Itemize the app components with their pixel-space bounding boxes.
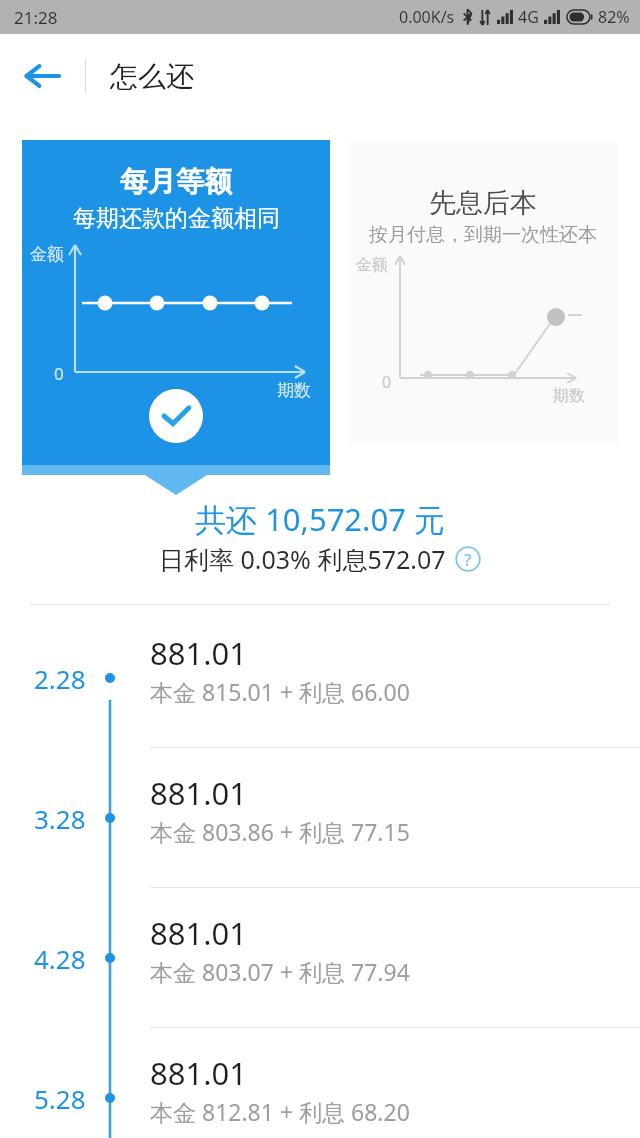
staticText: 按月付息，到期一次性还本: [369, 223, 597, 247]
staticText: 期数: [553, 386, 585, 406]
staticText: 2.28: [34, 661, 86, 696]
staticText: 881.01: [150, 912, 247, 954]
button[interactable]: 先息后本: [348, 143, 618, 443]
staticText: 金额: [356, 255, 388, 275]
staticText: 期数: [277, 380, 311, 401]
button[interactable]: Help: [454, 545, 482, 573]
button[interactable]: 2.28: [0, 608, 640, 748]
staticText: 881.01: [150, 772, 247, 814]
staticText: ?: [464, 548, 472, 571]
staticText: 5.28: [34, 1081, 86, 1116]
staticText: 先息后本: [429, 186, 537, 220]
staticText: 82%: [598, 6, 630, 28]
staticText: 0: [382, 371, 392, 393]
staticText: 0: [54, 362, 64, 385]
staticText: 每月等额: [120, 164, 232, 199]
button[interactable]: 4.28: [0, 888, 640, 1028]
staticText: 本金 815.01 + 利息 66.00: [150, 676, 410, 707]
staticText: 金额: [30, 244, 64, 265]
button[interactable]: 3.28: [0, 748, 640, 888]
staticText: 共还 10,572.07 元: [0, 498, 640, 540]
staticText: 4.28: [34, 941, 86, 976]
button[interactable]: Back: [0, 34, 84, 118]
staticText: 21:28: [14, 6, 58, 29]
staticText: 881.01: [150, 1052, 247, 1094]
staticText: 每期还款的金额相同: [73, 204, 280, 233]
staticText: 4G: [518, 6, 539, 28]
button[interactable]: 每月等额: [22, 140, 330, 465]
staticText: 3.28: [34, 801, 86, 836]
staticText: 怎么还: [110, 59, 194, 94]
staticText: 0.00K/s: [399, 6, 455, 28]
staticText: 本金 803.86 + 利息 77.15: [150, 816, 410, 847]
staticText: 881.01: [150, 632, 247, 674]
button[interactable]: 5.28: [0, 1028, 640, 1138]
staticText: 日利率 0.03% 利息572.07: [159, 542, 446, 576]
staticText: 本金 812.81 + 利息 68.20: [150, 1096, 410, 1127]
staticText: 本金 803.07 + 利息 77.94: [150, 956, 410, 987]
